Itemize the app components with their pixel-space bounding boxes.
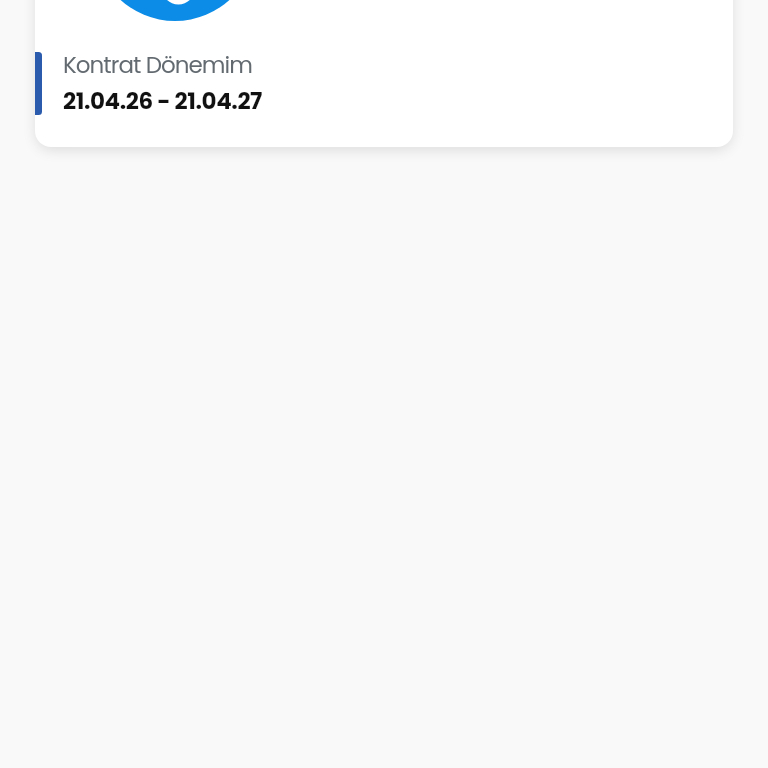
staticText: 21.04.26 - 21.04.27 [63, 85, 262, 117]
other: Profile [94, 0, 256, 21]
button[interactable]: Profile [35, 0, 733, 147]
staticText: Kontrat Dönemim [63, 49, 252, 81]
